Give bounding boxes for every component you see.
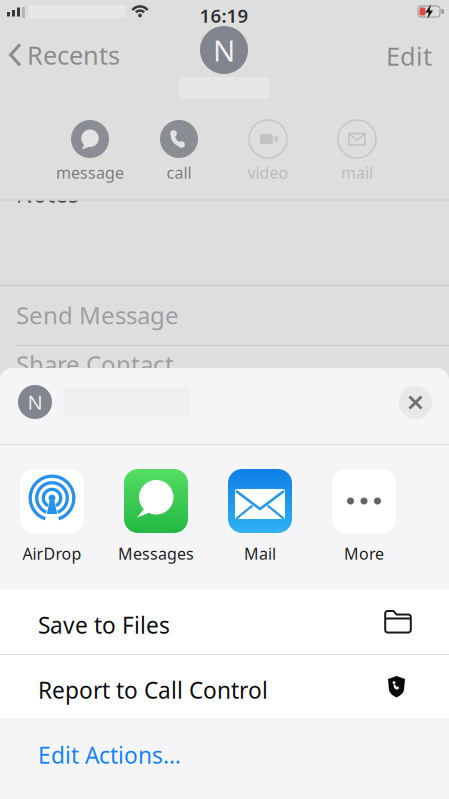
staticText: Edit Actions… (38, 740, 181, 770)
button[interactable]: Share Contact (16, 353, 449, 375)
button[interactable]: Recents (9, 38, 120, 72)
staticText: video (247, 162, 288, 183)
staticText: Messages (118, 543, 194, 564)
button[interactable]: message (50, 120, 130, 183)
button[interactable]: call (139, 120, 219, 183)
button[interactable]: Edit (332, 39, 432, 73)
button[interactable]: video (228, 120, 308, 183)
staticText: AirDrop (22, 543, 81, 564)
staticText: mail (341, 162, 373, 183)
staticText: N (213, 30, 235, 69)
button[interactable]: Save to Files (0, 589, 449, 654)
button[interactable]: Send Message (16, 286, 449, 344)
staticText: Notes (16, 179, 79, 209)
button[interactable]: More (320, 469, 408, 564)
staticText: Send Message (16, 299, 179, 331)
button[interactable]: Close (399, 386, 432, 419)
staticText: message (56, 162, 124, 183)
staticText: Recents (27, 38, 120, 72)
staticText: Mail (244, 543, 276, 564)
button[interactable]: Messages (112, 469, 200, 564)
staticText: call (166, 162, 191, 183)
staticText: Edit (386, 39, 432, 73)
button[interactable]: Edit Actions… (38, 740, 181, 770)
staticText: Share Contact (16, 348, 174, 380)
staticText: N (27, 389, 42, 415)
button[interactable]: mail (317, 120, 397, 183)
staticText: More (344, 543, 384, 564)
staticText: Save to Files (38, 610, 170, 640)
button[interactable]: AirDrop (8, 469, 96, 564)
button[interactable]: Mail (216, 469, 304, 564)
staticText: 16:19 (199, 3, 248, 28)
button[interactable]: Report to Call Control (0, 655, 449, 718)
staticText: Report to Call Control (38, 675, 268, 705)
